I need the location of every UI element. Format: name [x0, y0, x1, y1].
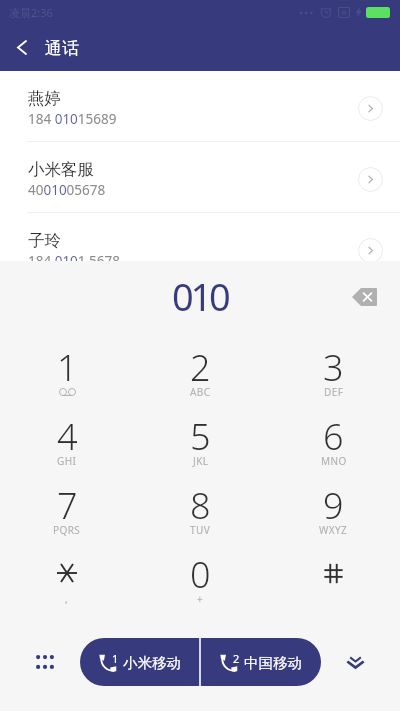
staticText: MNO — [321, 454, 347, 468]
button[interactable]: Details — [358, 96, 383, 121]
button[interactable]: 2 — [134, 334, 267, 403]
staticText: 9 — [323, 481, 344, 530]
staticText: 中国移动 — [244, 654, 302, 672]
staticText: 4 — [57, 412, 78, 461]
staticText: 6 — [323, 412, 344, 461]
staticText: JKL — [193, 454, 209, 468]
staticText: 通话 — [45, 38, 79, 59]
staticText: 2 — [233, 651, 240, 666]
staticText: 1 — [57, 343, 78, 392]
staticText: , — [65, 592, 69, 606]
staticText: 5 — [190, 412, 211, 461]
button[interactable]: 5 — [134, 403, 267, 472]
staticText: 凌晨2:36 — [9, 5, 53, 20]
button[interactable]: 1 — [80, 638, 199, 686]
staticText: 小米移动 — [123, 654, 181, 672]
button[interactable]: 7 — [0, 472, 134, 541]
staticText: 184 0101 5678 — [28, 252, 120, 270]
button[interactable]: 1 — [0, 334, 134, 403]
staticText: 3 — [323, 343, 344, 392]
staticText: 1 — [112, 651, 119, 666]
button[interactable]: 9 — [267, 472, 400, 541]
button[interactable]: 6 — [267, 403, 400, 472]
staticText: 8 — [190, 481, 211, 530]
button[interactable]: Details — [358, 167, 383, 192]
button[interactable]: 燕婷 — [0, 71, 400, 141]
staticText: DEF — [324, 385, 344, 399]
staticText: 小米客服 — [28, 159, 94, 180]
button[interactable]: 3 — [267, 334, 400, 403]
staticText: 184 01015689 — [28, 110, 117, 128]
button[interactable]: 小米客服 — [0, 142, 400, 212]
button[interactable]: 4 — [0, 403, 134, 472]
staticText: + — [197, 592, 204, 606]
staticText: ABC — [190, 385, 211, 399]
staticText: 7 — [57, 481, 78, 530]
staticText: 子玲 — [28, 230, 61, 251]
button[interactable]: Hide keypad — [321, 638, 400, 686]
staticText: TUV — [190, 523, 211, 537]
button[interactable]: Back — [0, 24, 44, 71]
staticText: 4001005678 — [28, 181, 106, 199]
button[interactable]: 子玲 — [0, 213, 400, 283]
button[interactable]: 0 — [134, 541, 267, 610]
staticText: 燕婷 — [28, 88, 61, 109]
staticText: 0 — [190, 550, 211, 599]
button[interactable]: 2 — [201, 638, 321, 686]
button[interactable]: 8 — [134, 472, 267, 541]
staticText: PQRS — [53, 523, 81, 537]
button[interactable] — [267, 541, 400, 610]
button[interactable]: Details — [358, 238, 383, 263]
staticText: 010 — [172, 270, 228, 322]
staticText: WXYZ — [319, 523, 348, 537]
staticText: 2 — [190, 343, 211, 392]
button[interactable]: Backspace — [342, 275, 386, 319]
button[interactable]: , — [0, 541, 134, 610]
button[interactable]: More options — [0, 638, 80, 686]
staticText: GHI — [57, 454, 77, 468]
